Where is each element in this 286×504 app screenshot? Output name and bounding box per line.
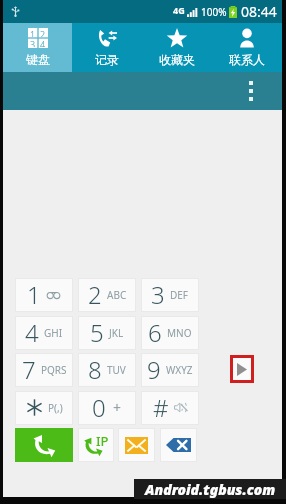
button[interactable]: 8 — [78, 353, 136, 387]
staticText: + — [113, 398, 122, 417]
staticText: PQRS — [41, 363, 67, 377]
staticText: ABC — [107, 288, 127, 302]
staticText: 7 — [22, 353, 36, 386]
button[interactable]: 6 — [141, 316, 199, 350]
staticText: GHI — [44, 326, 63, 340]
button[interactable]: 1 — [3, 23, 72, 72]
staticText: DEF — [170, 288, 189, 302]
button[interactable]: # — [141, 391, 199, 425]
staticText: 4 — [40, 38, 46, 47]
staticText: 4 — [25, 316, 39, 349]
button[interactable]: 4 — [15, 316, 73, 350]
staticText: # — [153, 391, 169, 424]
button[interactable]: 3 — [141, 278, 199, 312]
button[interactable]: Call — [15, 428, 73, 462]
button[interactable]: 联系人 — [212, 23, 282, 72]
staticText: 收藏夹 — [159, 52, 195, 67]
staticText: TUV — [107, 363, 126, 377]
button[interactable]: More options — [234, 74, 268, 108]
staticText: 9 — [147, 353, 161, 386]
button[interactable]: IP call — [78, 428, 114, 462]
button[interactable]: 9 — [141, 353, 199, 387]
staticText: 记录 — [95, 52, 119, 67]
staticText: 8 — [88, 353, 102, 386]
button[interactable]: P(,) — [15, 391, 73, 425]
staticText: 0 — [92, 391, 106, 424]
staticText: 100% — [201, 5, 227, 19]
staticText: MNO — [167, 326, 192, 340]
staticText: 3 — [30, 38, 36, 47]
staticText: 键盘 — [26, 52, 50, 67]
staticText: IP — [96, 432, 109, 450]
button[interactable]: 记录 — [72, 23, 142, 72]
staticText: 6 — [148, 316, 162, 349]
button[interactable]: 收藏夹 — [142, 23, 212, 72]
staticText: 联系人 — [229, 52, 265, 67]
button[interactable]: Message — [118, 428, 155, 462]
staticText: WXYZ — [166, 363, 193, 377]
button[interactable]: 5 — [78, 316, 136, 350]
staticText: 1 — [30, 28, 36, 37]
staticText: P(,) — [48, 401, 63, 415]
staticText: JKL — [109, 326, 124, 340]
staticText: 2 — [40, 28, 46, 37]
button[interactable]: 0 — [78, 391, 136, 425]
button[interactable]: 2 — [78, 278, 136, 312]
button[interactable]: Expand — [233, 358, 251, 380]
staticText: 1 — [27, 278, 41, 311]
staticText: 2 — [88, 278, 102, 311]
staticText: Android.tgbus.com — [145, 480, 276, 499]
staticText: 3 — [151, 278, 165, 311]
staticText: 08:44 — [241, 2, 277, 21]
staticText: 4G — [173, 4, 185, 16]
button[interactable]: 1 — [15, 278, 73, 312]
button[interactable]: 7 — [15, 353, 73, 387]
staticText: 5 — [90, 316, 104, 349]
button[interactable]: Backspace — [160, 428, 197, 462]
